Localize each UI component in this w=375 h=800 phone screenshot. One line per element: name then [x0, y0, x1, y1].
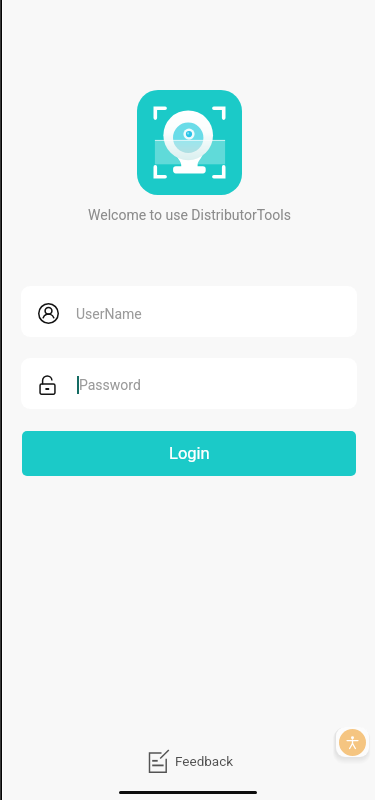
staticText: Password	[79, 377, 141, 393]
staticText: Login	[169, 444, 210, 463]
staticText: UserName	[76, 306, 142, 322]
button[interactable]: Accessibility	[336, 727, 369, 757]
button[interactable]: Feedback	[137, 742, 246, 780]
button[interactable]: Password	[21, 358, 357, 409]
button[interactable]: Login	[22, 431, 356, 476]
button[interactable]: UserName	[21, 286, 357, 337]
staticText: Welcome to use DistributorTools	[88, 207, 291, 223]
staticText: Feedback	[175, 753, 234, 769]
